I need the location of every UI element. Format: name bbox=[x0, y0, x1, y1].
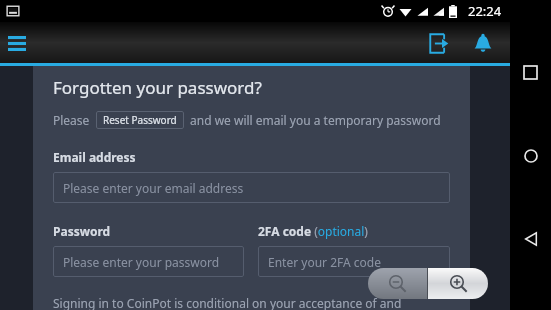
staticText: Please enter your email address bbox=[63, 180, 244, 196]
button[interactable]: Enter your 2FA code bbox=[258, 246, 450, 277]
staticText: Email address bbox=[53, 149, 136, 165]
button[interactable]: Home bbox=[510, 135, 551, 176]
staticText: Password bbox=[53, 223, 111, 239]
button[interactable]: Zoom in bbox=[428, 268, 488, 299]
button[interactable]: Please enter your password bbox=[53, 246, 244, 277]
staticText: Reset Password bbox=[103, 113, 177, 127]
staticText: Enter your 2FA code bbox=[268, 254, 381, 270]
button[interactable]: Zoom out bbox=[368, 268, 427, 299]
staticText: Please bbox=[53, 112, 90, 128]
staticText: and we will email you a temporary passwo… bbox=[190, 112, 441, 128]
staticText: Signing in to CoinPot is conditional on … bbox=[53, 295, 402, 310]
button[interactable]: Reset Password bbox=[96, 111, 184, 129]
staticText: 22:24 bbox=[468, 2, 502, 20]
staticText: Please enter your password bbox=[63, 254, 220, 270]
button[interactable]: Menu bbox=[2, 28, 32, 58]
button[interactable]: Back bbox=[510, 218, 551, 259]
staticText: 2FA code (optional) bbox=[258, 223, 368, 239]
staticText: Forgotten your password? bbox=[53, 76, 262, 99]
button[interactable]: Please enter your email address bbox=[53, 172, 450, 203]
button[interactable]: Sign in bbox=[424, 28, 454, 58]
button[interactable]: Notifications bbox=[468, 28, 498, 58]
button[interactable]: Recent apps bbox=[510, 52, 551, 93]
